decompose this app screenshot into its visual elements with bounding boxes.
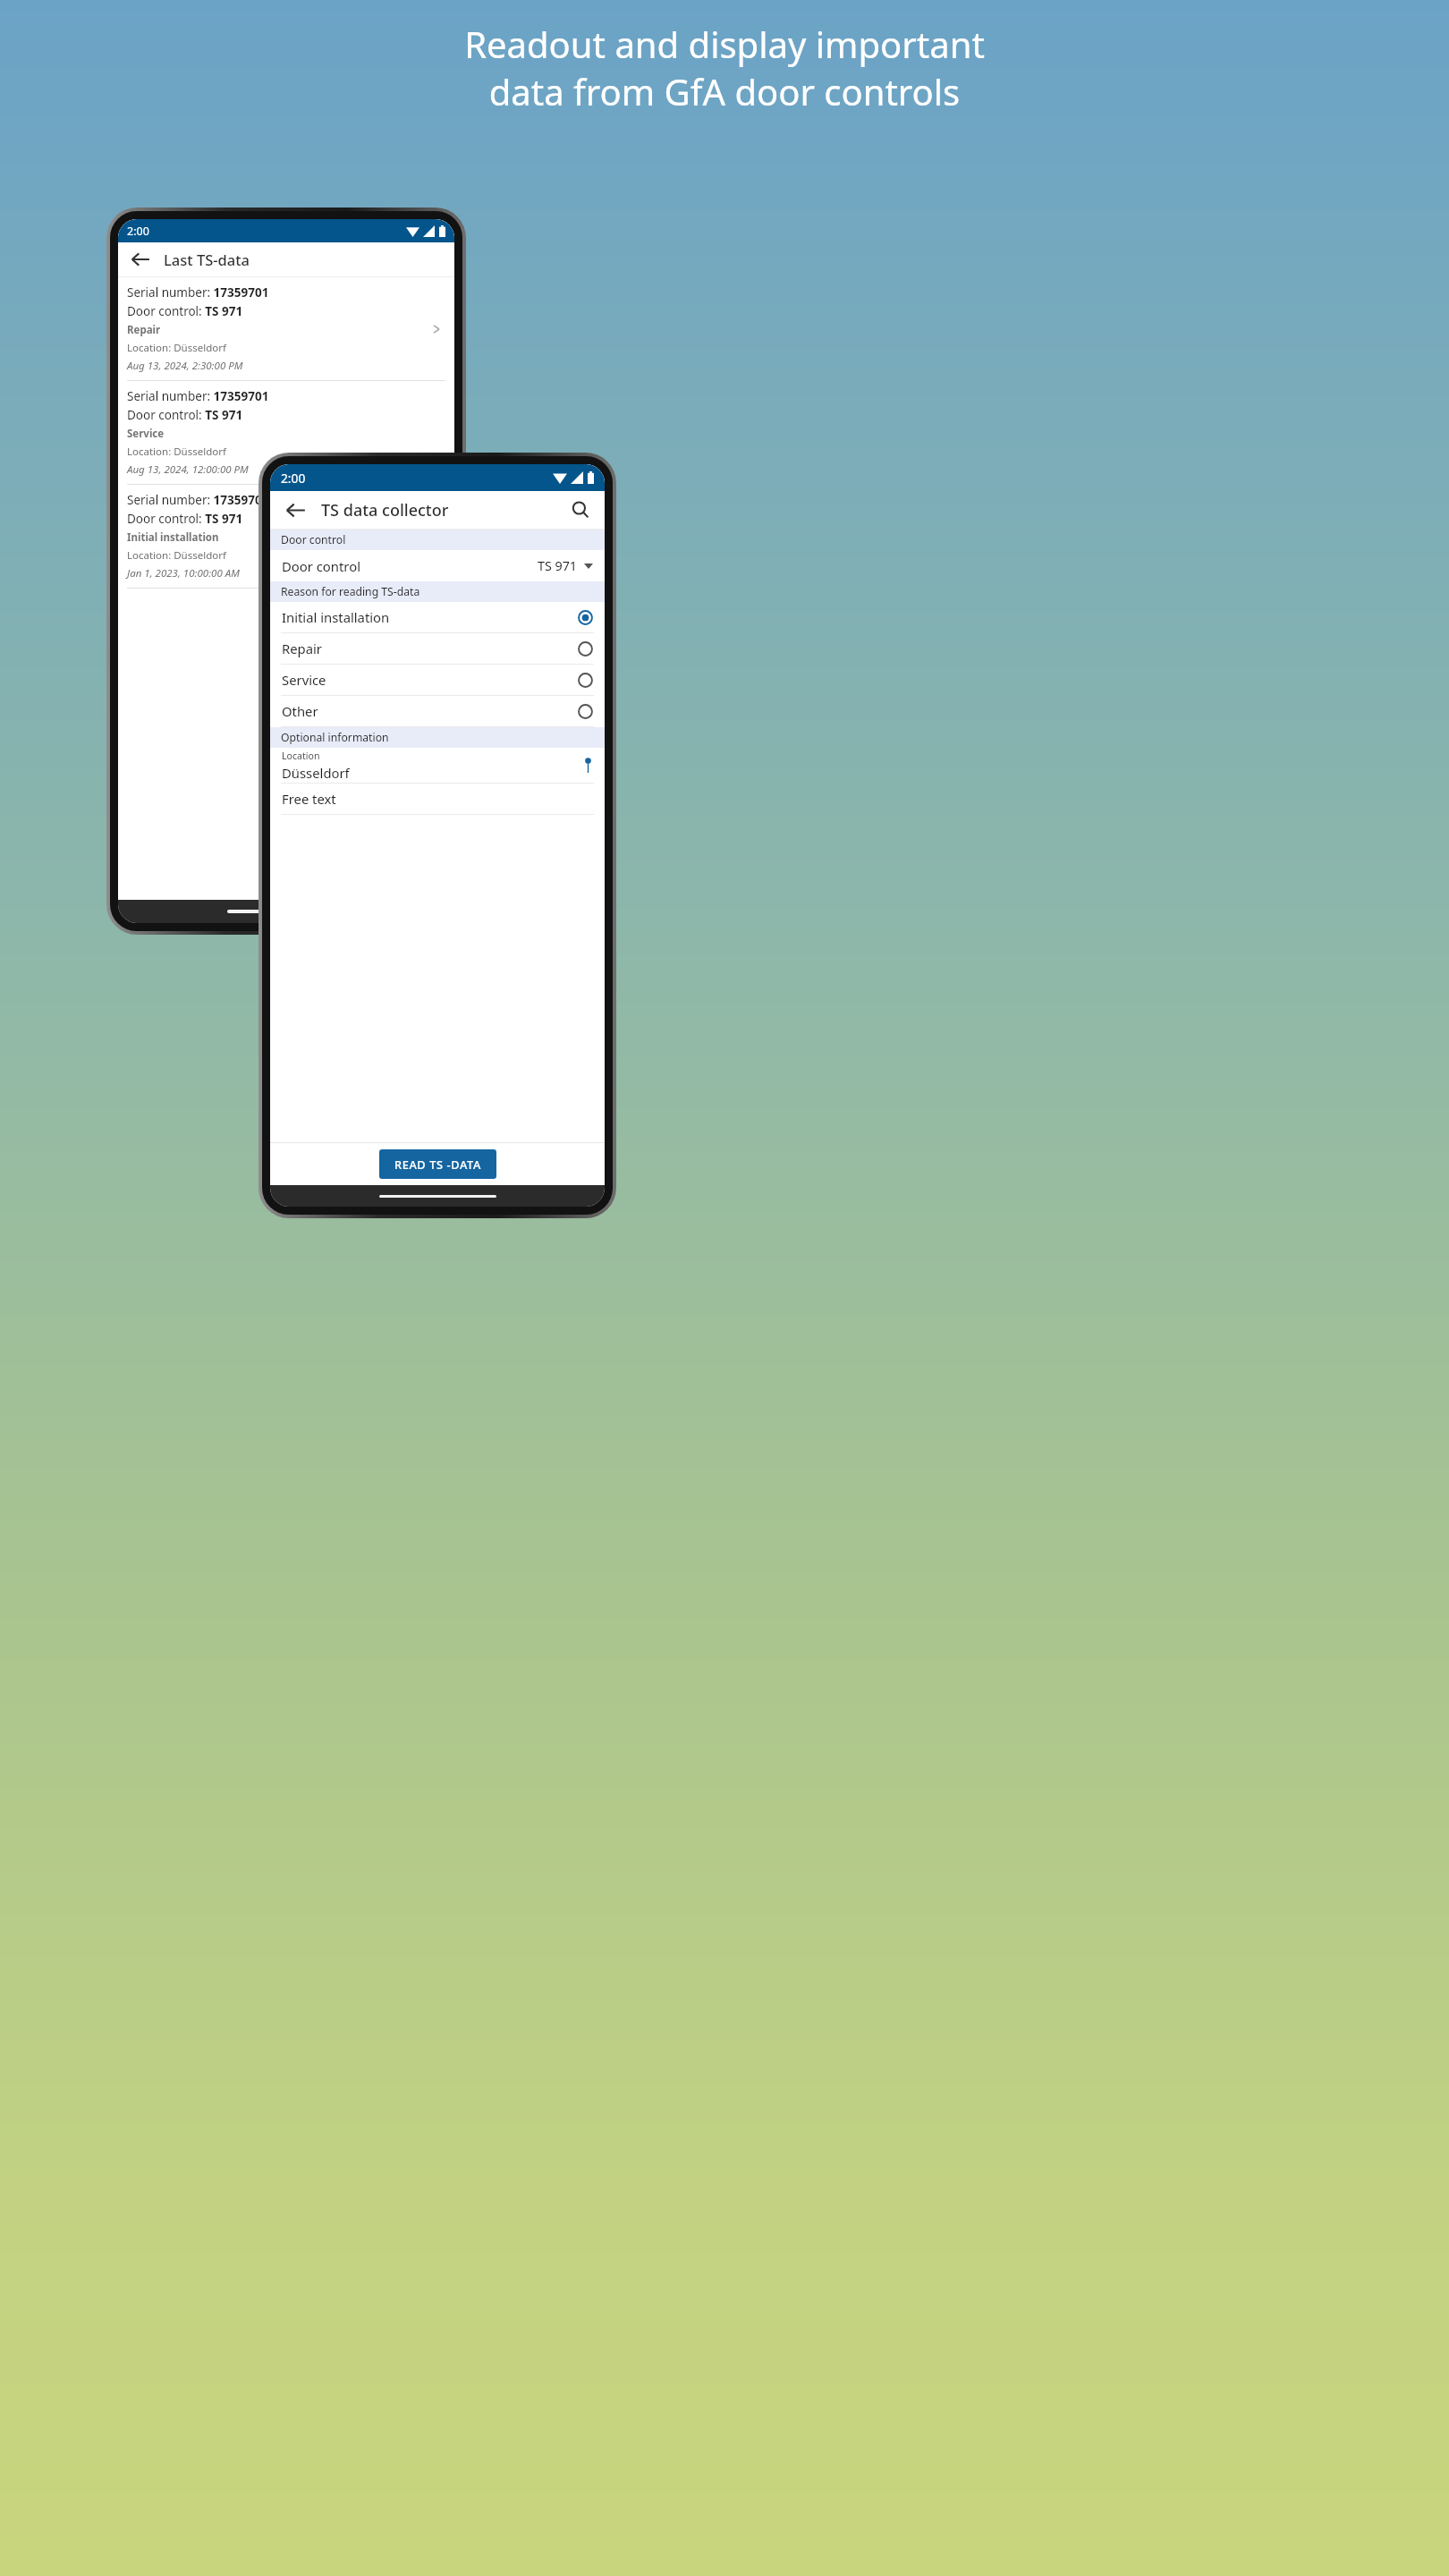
button[interactable]: Back xyxy=(281,496,309,524)
staticText: Readout and display important data from … xyxy=(464,20,985,116)
staticText: Jan 1, 2023, 10:00:00 AM xyxy=(127,566,240,580)
staticText: Location: Düsseldorf xyxy=(127,341,226,355)
staticText: Service xyxy=(282,671,326,689)
staticText: READ TS -DATA xyxy=(394,1157,481,1172)
button[interactable]: Other xyxy=(270,696,605,726)
button[interactable]: Search xyxy=(567,496,594,523)
staticText: Serial number: 17359701 xyxy=(127,284,269,301)
button[interactable]: READ TS -DATA xyxy=(379,1149,496,1179)
button[interactable]: Serial number: 17359701 xyxy=(118,277,454,380)
staticText: Service xyxy=(127,427,165,441)
staticText: Location xyxy=(282,750,320,762)
staticText: Serial number: 17359701 xyxy=(127,492,269,508)
staticText: Door control: TS 971 xyxy=(127,407,243,423)
staticText: Door control: TS 971 xyxy=(127,303,243,319)
staticText: Repair xyxy=(282,640,322,657)
staticText: Initial installation xyxy=(127,530,219,545)
staticText: 2:00 xyxy=(127,224,149,239)
staticText: 2:00 xyxy=(281,470,306,487)
button[interactable]: Back xyxy=(127,246,154,273)
button[interactable]: Serial number: 17359701 xyxy=(118,485,454,588)
staticText: Door control xyxy=(281,532,346,547)
staticText: Door control: TS 971 xyxy=(127,511,243,527)
staticText: Optional information xyxy=(281,730,389,745)
staticText: Aug 13, 2024, 12:00:00 PM xyxy=(127,462,249,477)
staticText: TS 971 xyxy=(538,557,578,574)
staticText: Repair xyxy=(127,323,161,337)
staticText: Free text xyxy=(282,790,336,808)
staticText: Last TS-data xyxy=(164,250,250,269)
button[interactable]: Serial number: 17359701 xyxy=(118,381,454,484)
staticText: Door control xyxy=(282,557,360,575)
staticText: Location: Düsseldorf xyxy=(127,445,226,459)
button[interactable]: Service xyxy=(270,665,605,695)
staticText: Aug 13, 2024, 2:30:00 PM xyxy=(127,359,243,373)
button[interactable]: Initial installation xyxy=(270,602,605,632)
staticText: Düsseldorf xyxy=(282,764,350,782)
staticText: Other xyxy=(282,702,318,720)
button[interactable]: Free text xyxy=(270,784,605,814)
button[interactable]: Door control xyxy=(270,550,605,581)
staticText: Reason for reading TS-data xyxy=(281,584,420,599)
staticText: TS data collector xyxy=(321,499,449,521)
staticText: Location: Düsseldorf xyxy=(127,548,226,563)
staticText: Initial installation xyxy=(282,608,390,626)
button[interactable]: Location xyxy=(270,748,605,783)
staticText: Serial number: 17359701 xyxy=(127,388,269,404)
button[interactable]: Repair xyxy=(270,633,605,664)
